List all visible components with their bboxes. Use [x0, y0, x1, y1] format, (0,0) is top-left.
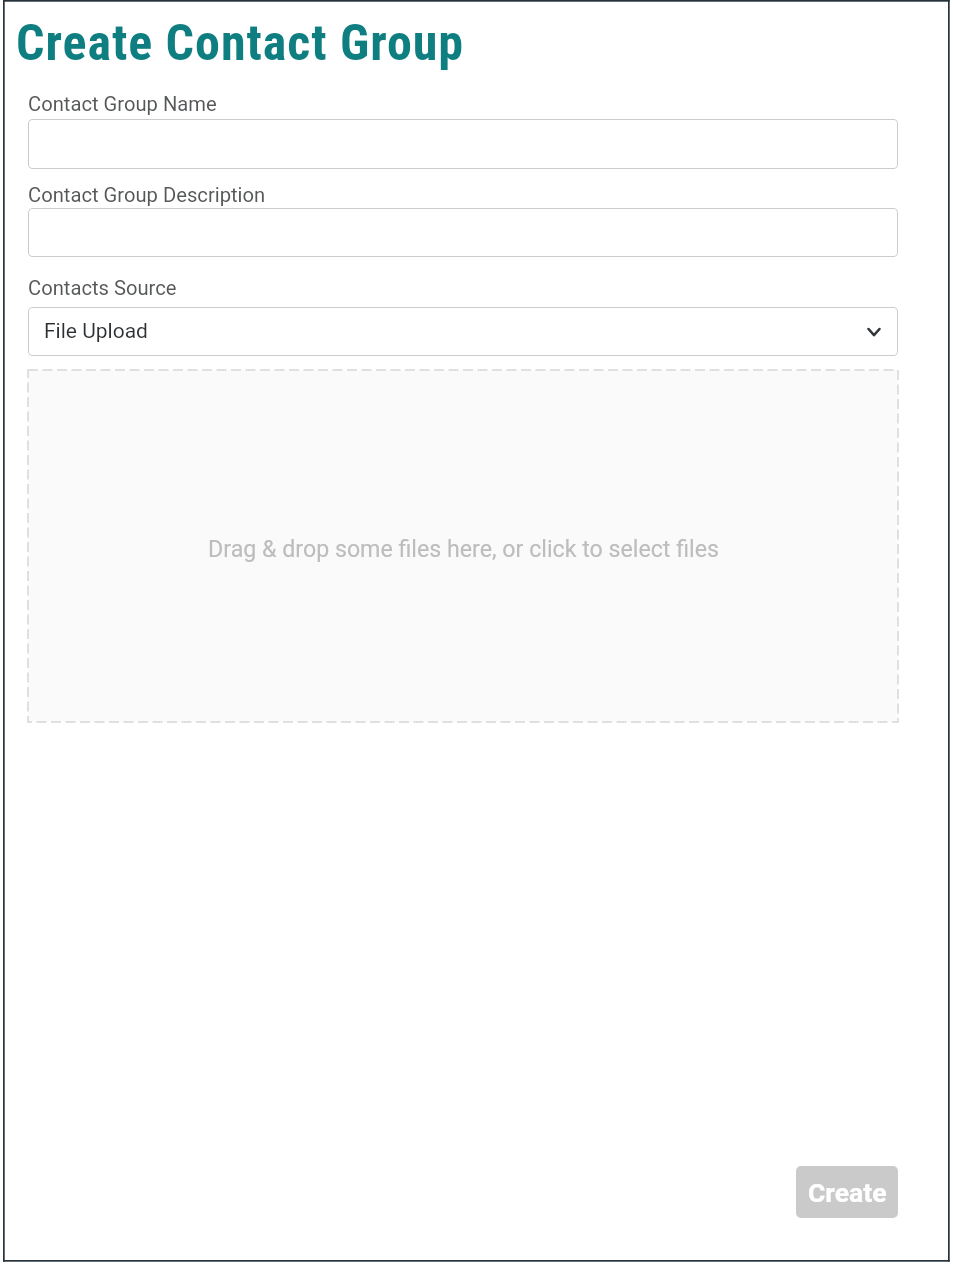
staticText: Create	[808, 1177, 887, 1208]
staticText: Create Contact Group	[16, 14, 464, 73]
staticText: Contact Group Description	[28, 183, 266, 207]
button[interactable]: Contact Group Name text field	[28, 119, 898, 169]
staticText: Drag & drop some files here, or click to…	[208, 535, 719, 562]
staticText: Contacts Source	[28, 276, 177, 300]
button[interactable]: Contact Group Description text field	[28, 208, 898, 257]
button[interactable]: Create	[796, 1166, 898, 1218]
staticText: File Upload	[44, 319, 148, 344]
staticText: Contact Group Name	[28, 92, 217, 116]
button[interactable]: Contacts source: File Upload	[28, 307, 898, 356]
button[interactable]: File drop zone	[28, 370, 898, 722]
